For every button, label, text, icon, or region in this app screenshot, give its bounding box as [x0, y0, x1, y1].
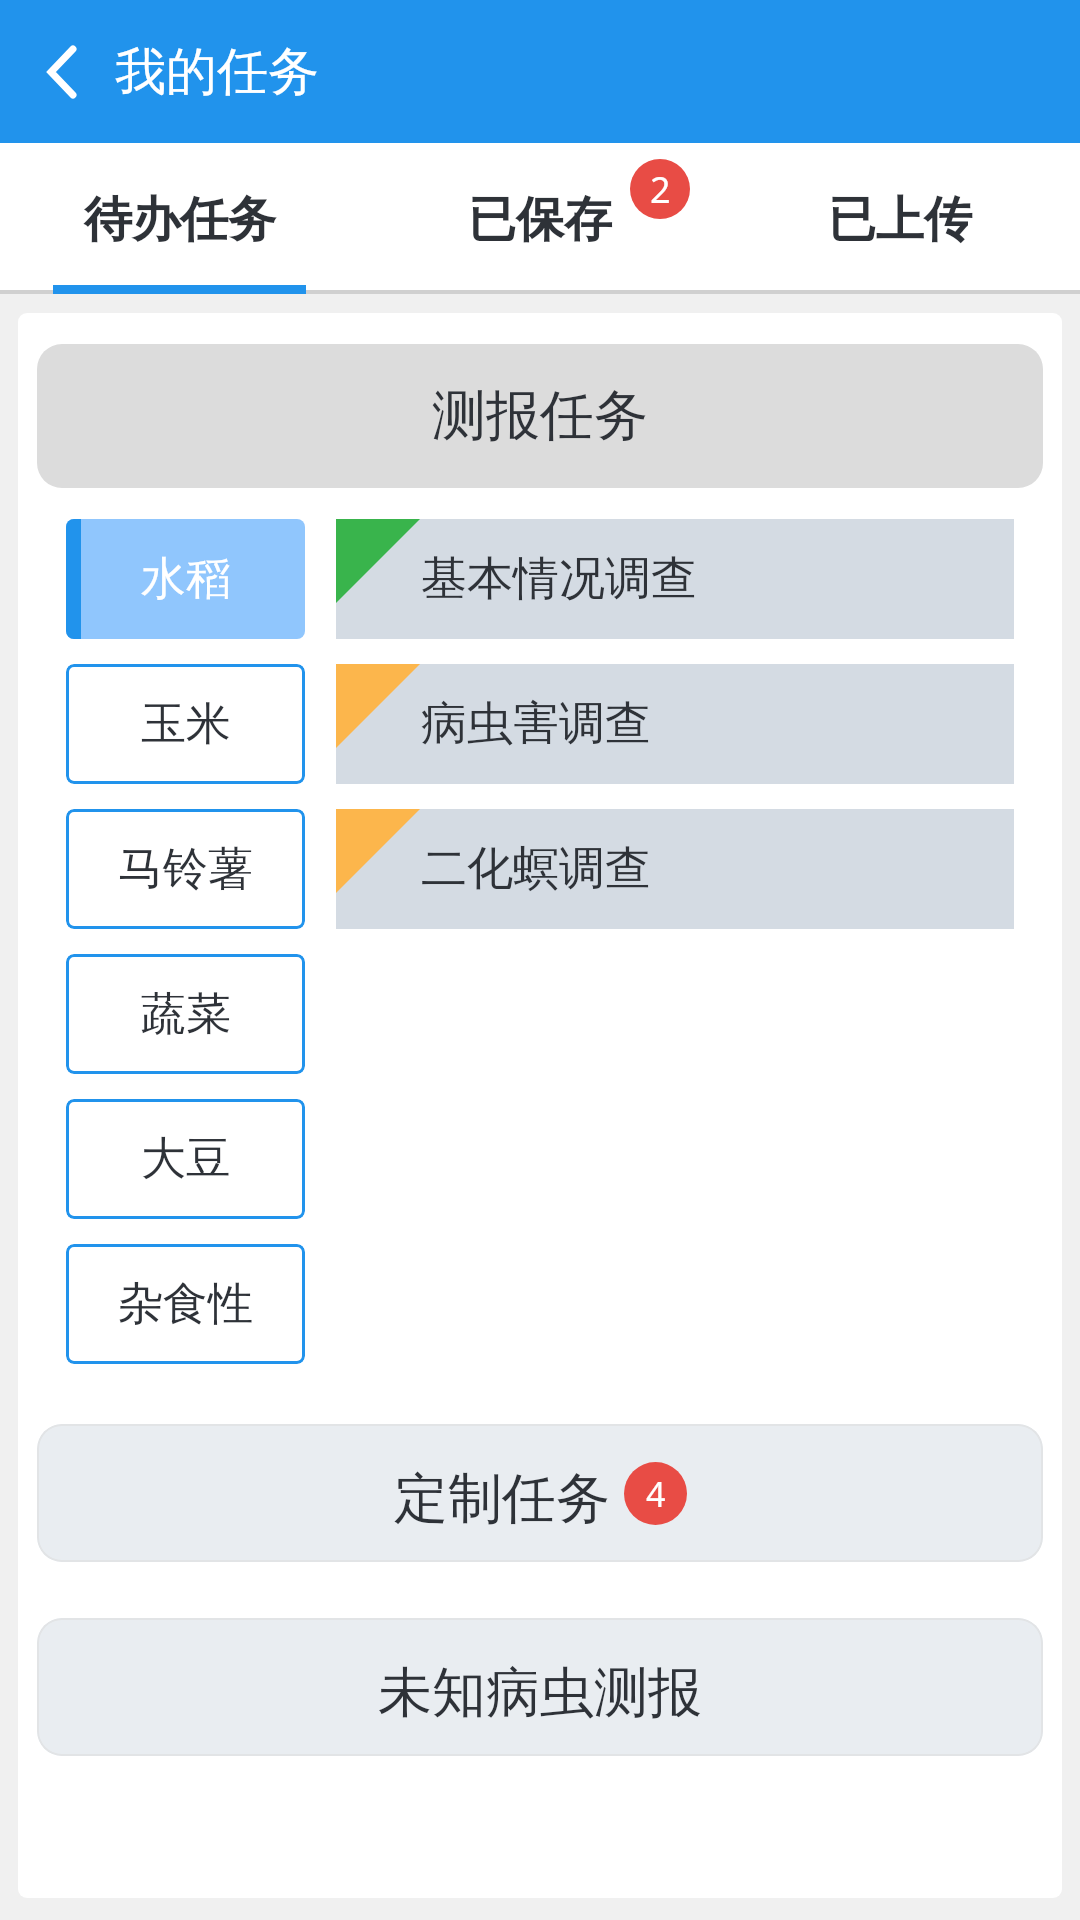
button[interactable]: 测报任务: [37, 344, 1043, 488]
staticText: 已上传: [828, 190, 972, 250]
button[interactable]: 二化螟调查: [336, 809, 1014, 929]
staticText: 4: [646, 1471, 666, 1517]
staticText: 玉米: [141, 696, 231, 753]
staticText: 未知病虫测报: [378, 1659, 702, 1727]
staticText: 杂食性: [118, 1276, 253, 1333]
staticText: 蔬菜: [141, 986, 231, 1043]
button[interactable]: 杂食性: [66, 1244, 305, 1364]
button[interactable]: 大豆: [66, 1099, 305, 1219]
button[interactable]: 已上传: [720, 143, 1080, 294]
staticText: 2: [650, 165, 671, 214]
staticText: 待办任务: [84, 190, 276, 250]
staticText: 定制任务: [394, 1465, 610, 1533]
staticText: 大豆: [141, 1131, 231, 1188]
staticText: 已保存: [468, 190, 612, 250]
button[interactable]: 病虫害调查: [336, 664, 1014, 784]
button[interactable]: 已保存: [360, 143, 720, 294]
button[interactable]: 马铃薯: [66, 809, 305, 929]
staticText: 病虫害调查: [421, 695, 651, 753]
button[interactable]: 水稻: [66, 519, 305, 639]
staticText: 水稻: [141, 551, 231, 608]
button[interactable]: 玉米: [66, 664, 305, 784]
button[interactable]: 定制任务: [37, 1424, 1043, 1562]
button[interactable]: Back: [0, 0, 115, 143]
staticText: 基本情况调查: [421, 550, 697, 608]
staticText: 测报任务: [432, 382, 648, 450]
staticText: 二化螟调查: [421, 840, 651, 898]
staticText: 马铃薯: [118, 841, 253, 898]
button[interactable]: 蔬菜: [66, 954, 305, 1074]
button[interactable]: 待办任务: [0, 143, 360, 294]
staticText: 我的任务: [115, 40, 319, 104]
button[interactable]: 基本情况调查: [336, 519, 1014, 639]
button[interactable]: 未知病虫测报: [37, 1618, 1043, 1756]
